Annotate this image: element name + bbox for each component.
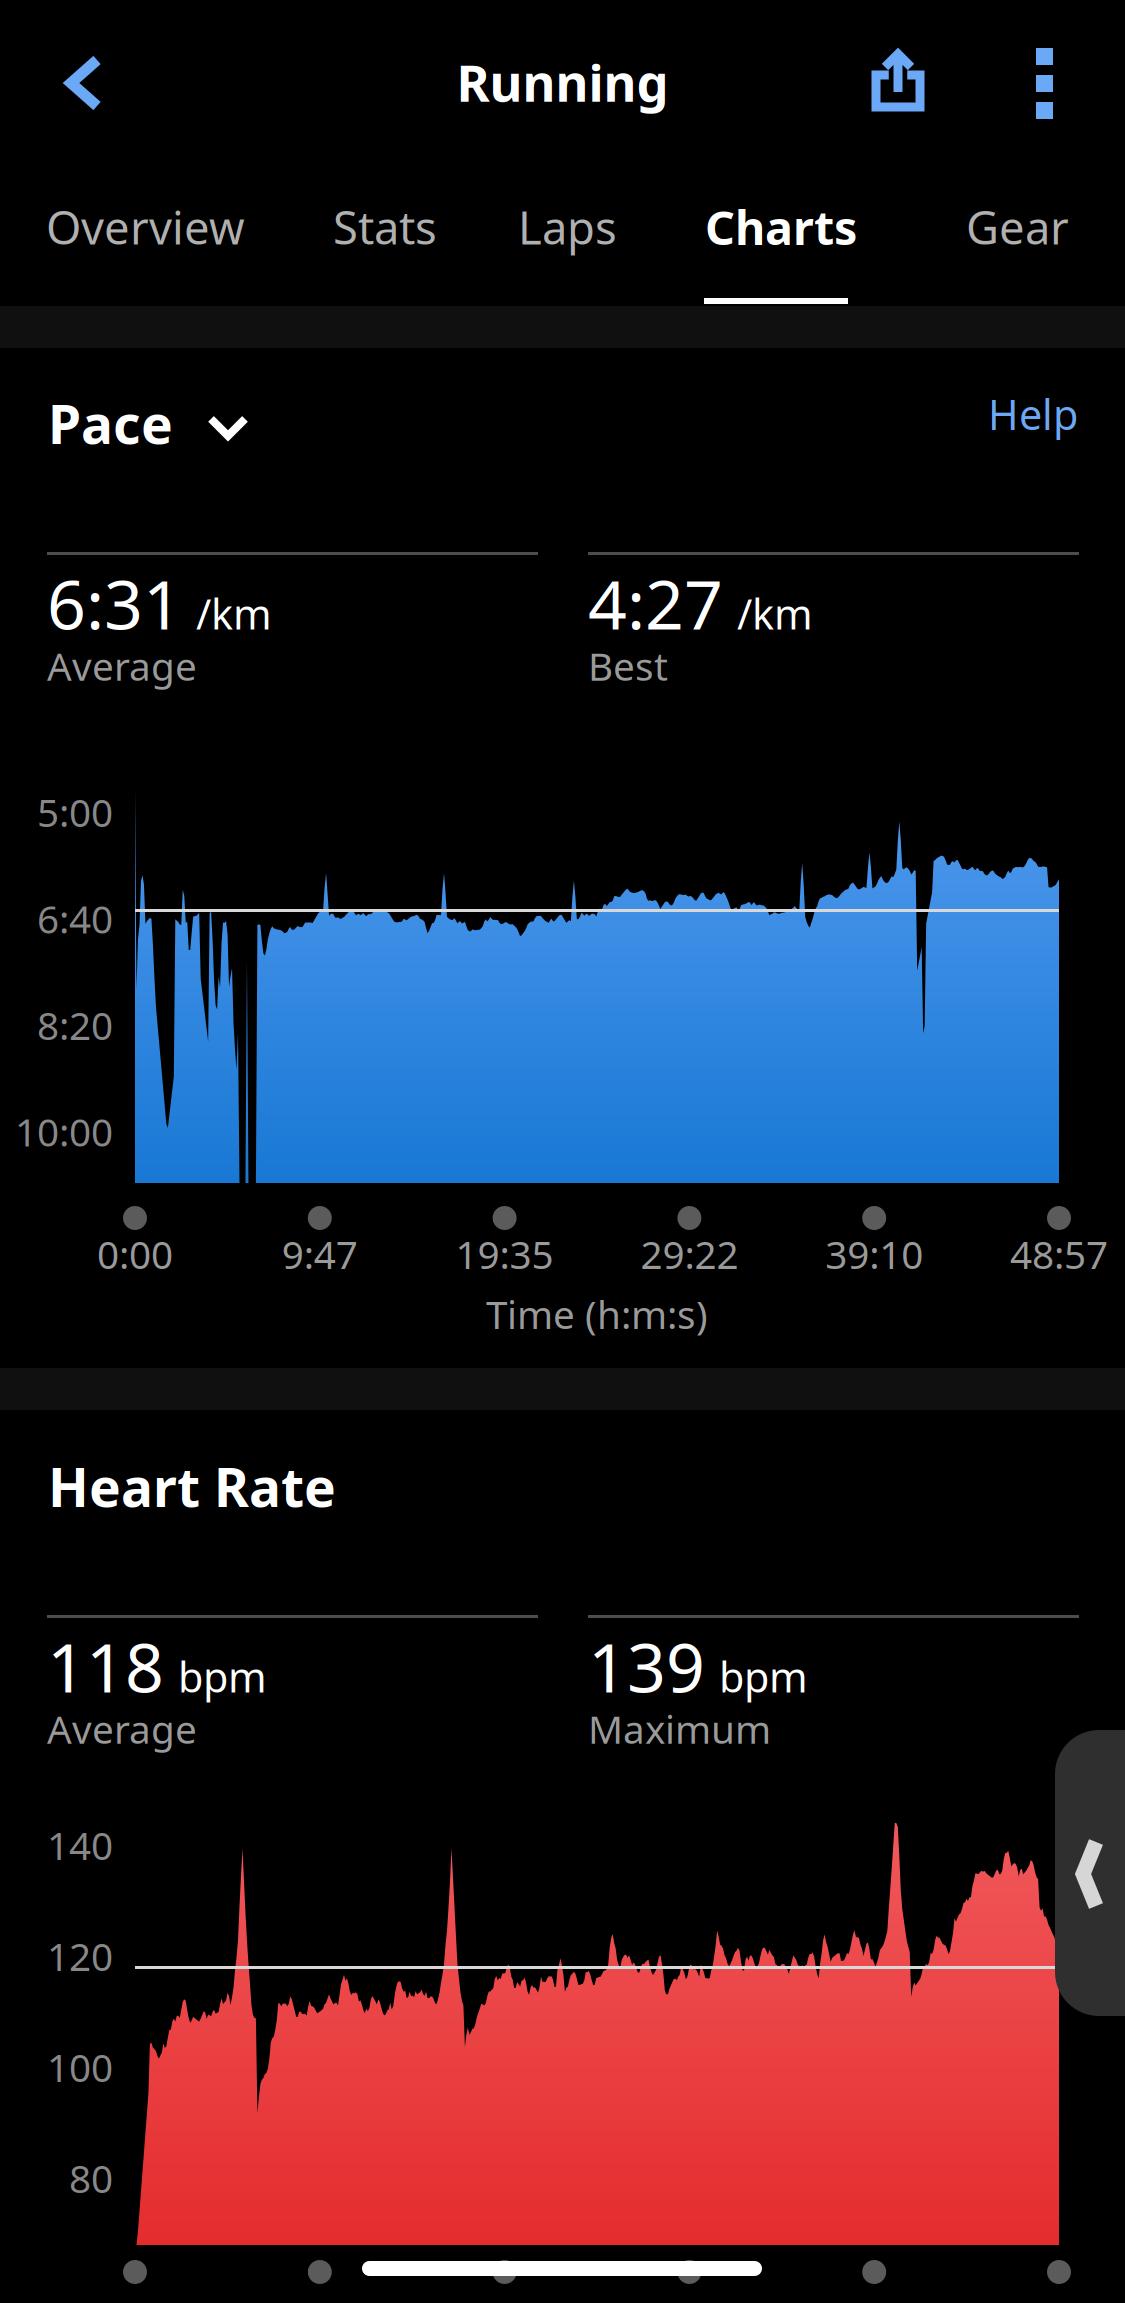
staticText: 100 xyxy=(47,2041,113,2093)
staticText: 10:00 xyxy=(15,1106,113,1157)
staticText: Average xyxy=(47,640,197,691)
button[interactable]: Help xyxy=(0,390,1078,438)
staticText: 29:22 xyxy=(640,1228,738,1280)
button[interactable]: Charts xyxy=(705,178,857,276)
staticText: Time (h:m:s) xyxy=(486,1288,708,1340)
staticText: Running xyxy=(456,48,668,116)
staticText: /km xyxy=(196,586,272,641)
staticText: Maximum xyxy=(588,1703,771,1754)
staticText: Stats xyxy=(333,197,437,257)
staticText: 139 xyxy=(588,1621,705,1711)
staticText: Heart Rate xyxy=(48,1451,336,1522)
button[interactable]: Pace xyxy=(48,378,251,469)
button[interactable]: Share xyxy=(838,20,958,148)
staticText: 48:57 xyxy=(1010,1228,1108,1280)
button[interactable]: Gear xyxy=(966,178,1069,276)
staticText: 6:31 xyxy=(47,558,182,648)
staticText: Gear xyxy=(966,197,1069,257)
staticText: 19:35 xyxy=(456,1228,554,1280)
button[interactable]: Overview xyxy=(46,178,245,276)
button[interactable]: Back xyxy=(14,20,138,148)
button[interactable]: Open side panel xyxy=(1055,1730,1125,2016)
staticText: Help xyxy=(988,387,1078,441)
staticText: bpm xyxy=(719,1649,808,1704)
staticText: Charts xyxy=(705,196,857,258)
button[interactable]: Laps xyxy=(518,178,617,276)
button[interactable]: Stats xyxy=(333,178,437,276)
staticText: Best xyxy=(588,640,668,691)
staticText: 39:10 xyxy=(825,1228,923,1280)
staticText: Overview xyxy=(46,197,245,257)
staticText: 5:00 xyxy=(37,786,113,838)
staticText: Pace xyxy=(48,388,173,459)
staticText: 0:00 xyxy=(97,1228,173,1280)
staticText: 4:27 xyxy=(588,558,723,648)
staticText: Average xyxy=(47,1703,197,1754)
staticText: /km xyxy=(737,586,813,641)
staticText: 8:20 xyxy=(37,999,113,1051)
staticText: 118 xyxy=(47,1621,164,1711)
staticText: 6:40 xyxy=(37,893,113,944)
staticText: 9:47 xyxy=(282,1228,358,1280)
staticText: 120 xyxy=(47,1930,113,1982)
staticText: 80 xyxy=(69,2152,113,2204)
staticText: 140 xyxy=(47,1819,113,1871)
button[interactable]: More options xyxy=(988,20,1098,148)
staticText: bpm xyxy=(178,1649,267,1704)
staticText: Laps xyxy=(518,197,617,257)
